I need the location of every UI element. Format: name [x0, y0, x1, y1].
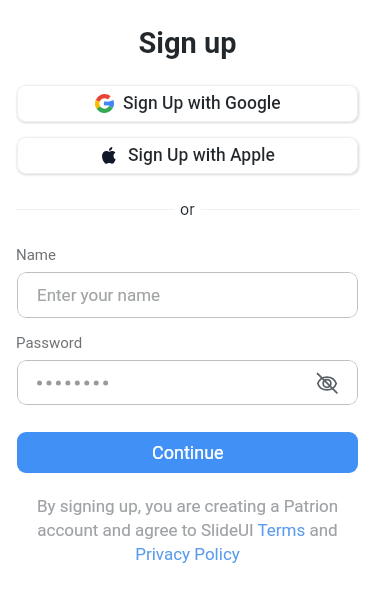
staticText: or	[180, 200, 195, 219]
button[interactable]: Sign Up with Google	[17, 85, 358, 122]
button[interactable]: Sign Up with Apple	[17, 137, 358, 174]
staticText: Continue	[152, 442, 224, 463]
button[interactable]: Enter your name	[17, 272, 358, 318]
staticText: Name	[16, 246, 56, 264]
other: Show password	[316, 372, 338, 394]
staticText: Sign up	[0, 26, 375, 60]
staticText: By signing up, you are creating a Patrio…	[18, 496, 357, 564]
staticText: Enter your name	[37, 285, 161, 305]
staticText: Sign Up with Apple	[128, 145, 275, 166]
button[interactable]: Continue	[17, 432, 358, 473]
staticText: Password	[16, 334, 83, 352]
staticText: Sign Up with Google	[123, 93, 281, 114]
button[interactable]: Show password	[17, 360, 358, 405]
